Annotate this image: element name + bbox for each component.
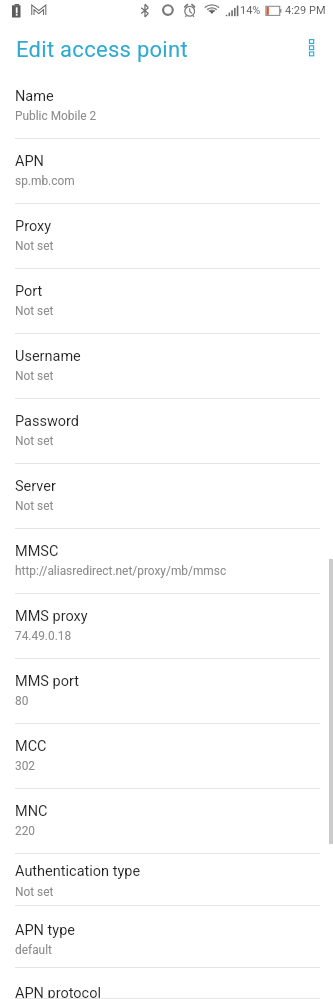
staticText: 14% bbox=[240, 4, 261, 17]
staticText: Not set bbox=[15, 369, 54, 383]
button[interactable]: MCC bbox=[0, 724, 333, 789]
staticText: Proxy bbox=[15, 218, 52, 235]
staticText: MNC bbox=[15, 803, 48, 820]
staticText: Not set bbox=[15, 239, 54, 253]
button[interactable]: Authentication type bbox=[0, 854, 333, 906]
staticText: Public Mobile 2 bbox=[15, 109, 97, 123]
button[interactable]: Username bbox=[0, 334, 333, 399]
button[interactable]: MMSC bbox=[0, 529, 333, 594]
staticText: Edit access point bbox=[16, 37, 188, 63]
staticText: 80 bbox=[15, 694, 29, 708]
staticText: Name bbox=[15, 88, 54, 105]
button[interactable]: Server bbox=[0, 464, 333, 529]
staticText: 74.49.0.18 bbox=[15, 629, 72, 643]
staticText: 302 bbox=[15, 759, 36, 773]
staticText: Not set bbox=[15, 434, 54, 448]
staticText: Not set bbox=[15, 304, 54, 318]
staticText: MMS proxy bbox=[15, 608, 88, 625]
button[interactable]: Proxy bbox=[0, 204, 333, 269]
button[interactable]: APN protocol bbox=[0, 968, 333, 999]
button[interactable]: Name bbox=[0, 74, 333, 139]
staticText: http://aliasredirect.net/proxy/mb/mmsc bbox=[15, 564, 227, 578]
staticText: 4:29 PM bbox=[285, 4, 326, 17]
staticText: sp.mb.com bbox=[15, 174, 75, 188]
staticText: 220 bbox=[15, 824, 36, 838]
button[interactable]: Port bbox=[0, 269, 333, 334]
staticText: Not set bbox=[15, 499, 54, 513]
staticText: Password bbox=[15, 413, 80, 430]
button[interactable]: Password bbox=[0, 399, 333, 464]
staticText: Not set bbox=[15, 885, 54, 899]
staticText: MMS port bbox=[15, 673, 79, 690]
staticText: default bbox=[15, 943, 52, 957]
staticText: Server bbox=[15, 478, 56, 495]
staticText: Port bbox=[15, 283, 43, 300]
staticText: MCC bbox=[15, 738, 47, 755]
staticText: APN type bbox=[15, 922, 75, 939]
button[interactable]: APN bbox=[0, 139, 333, 204]
button[interactable]: APN type bbox=[0, 906, 333, 968]
staticText: APN bbox=[15, 153, 44, 170]
staticText: APN protocol bbox=[15, 985, 101, 999]
staticText: Authentication type bbox=[15, 863, 141, 880]
button[interactable]: MMS port bbox=[0, 659, 333, 724]
button[interactable]: MMS proxy bbox=[0, 594, 333, 659]
button[interactable]: MNC bbox=[0, 789, 333, 854]
staticText: Username bbox=[15, 348, 81, 365]
staticText: MMSC bbox=[15, 543, 59, 560]
button[interactable]: More options bbox=[301, 35, 321, 61]
